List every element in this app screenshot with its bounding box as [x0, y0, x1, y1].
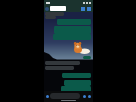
- button[interactable]: [57, 19, 91, 25]
- button[interactable]: Back: [45, 7, 49, 11]
- button[interactable]: Emoji: [46, 95, 49, 98]
- button[interactable]: [45, 16, 56, 19]
- button[interactable]: [64, 80, 91, 86]
- button[interactable]: [61, 86, 91, 92]
- button[interactable]: Camera: [88, 95, 91, 98]
- button[interactable]: [45, 61, 80, 65]
- button[interactable]: Attach: [83, 95, 86, 98]
- button[interactable]: [45, 66, 74, 70]
- button[interactable]: [50, 6, 66, 11]
- button[interactable]: [62, 73, 91, 78]
- button[interactable]: [50, 93, 80, 99]
